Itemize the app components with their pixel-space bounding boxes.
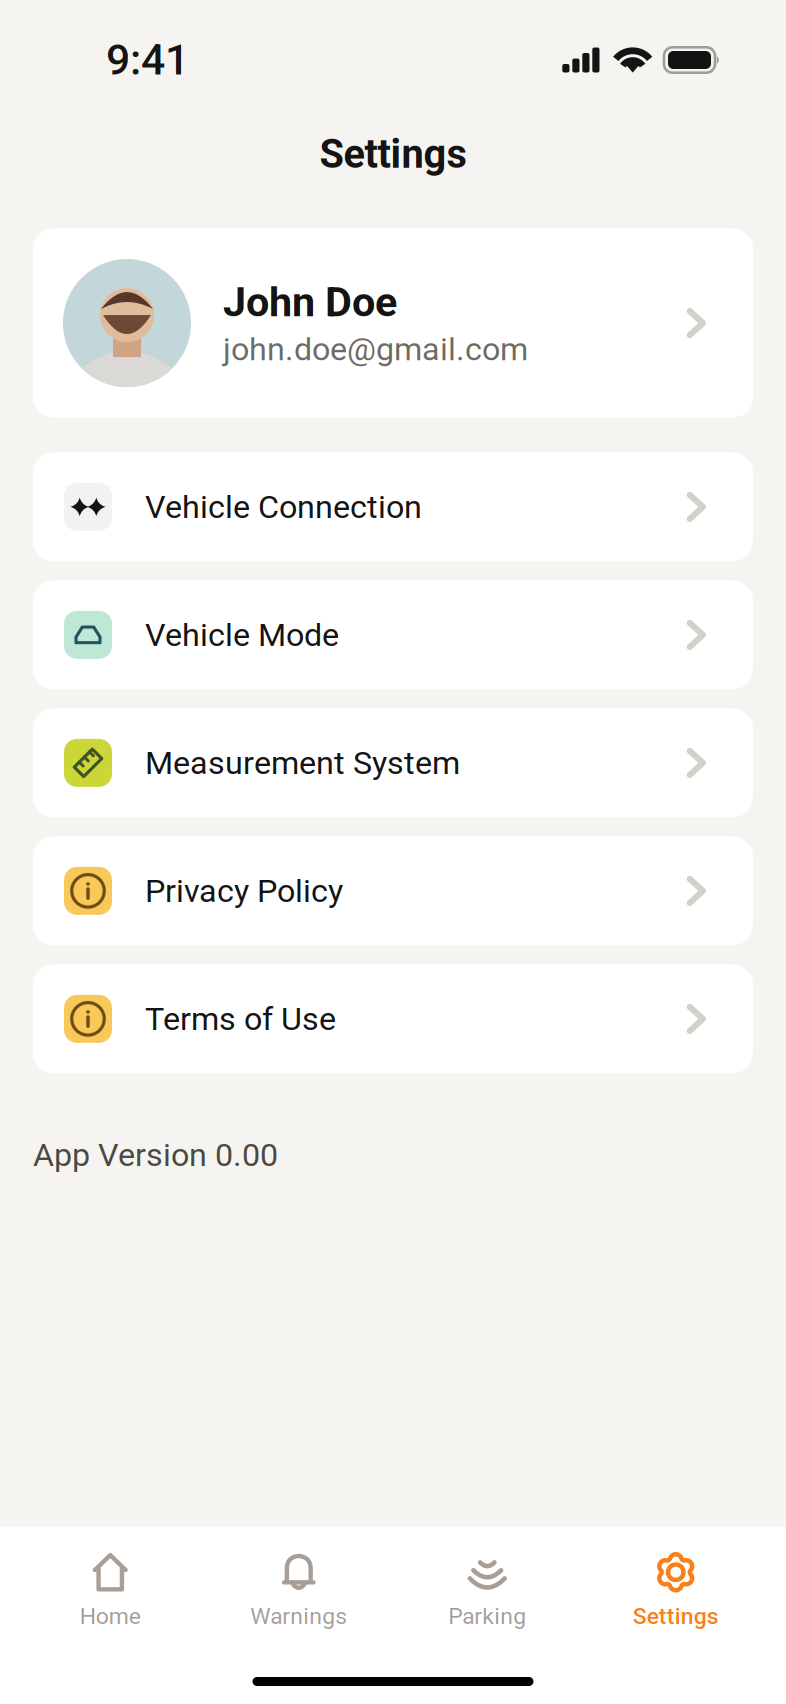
button[interactable]: Vehicle Mode [33,581,753,689]
staticText: 9:41 [106,35,189,85]
button[interactable]: Home [16,1527,204,1643]
staticText: Measurement System [145,744,460,782]
button[interactable]: Privacy Policy [33,837,753,945]
staticText: john.doe@gmail.com [223,330,528,368]
staticText: Vehicle Mode [145,616,339,654]
staticText: App Version 0.00 [33,1136,278,1174]
button[interactable]: Warnings [204,1527,393,1643]
staticText: John Doe [223,278,397,326]
button[interactable]: John Doe [33,229,753,418]
staticText: Home [80,1603,141,1630]
button[interactable]: Terms of Use [33,965,753,1073]
staticText: Warnings [250,1603,347,1630]
button[interactable]: Parking [393,1527,581,1643]
button[interactable]: Measurement System [33,709,753,817]
button[interactable]: Settings [581,1527,770,1643]
staticText: Parking [448,1603,526,1630]
staticText: Settings [319,131,466,178]
button[interactable]: Vehicle Connection [33,453,753,561]
staticText: Settings [633,1603,719,1630]
staticText: Privacy Policy [145,872,343,910]
staticText: Terms of Use [145,1000,336,1038]
staticText: Vehicle Connection [145,488,422,526]
